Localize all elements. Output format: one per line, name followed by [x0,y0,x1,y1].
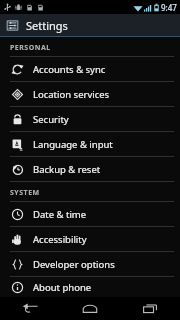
button[interactable]: Security [0,107,180,131]
staticText: Location services [33,88,110,101]
button[interactable]: About phone [0,277,180,297]
button[interactable]: Recent apps [120,297,180,320]
staticText: Settings [26,18,68,33]
staticText: Date & time [33,208,87,221]
button[interactable]: Developer options [0,252,180,276]
staticText: Language & input [33,138,113,151]
button[interactable]: Date & time [0,202,180,226]
button[interactable]: Location services [0,82,180,106]
staticText: About phone [33,281,92,294]
button[interactable]: Accounts & sync [0,57,180,81]
staticText: Backup & reset [33,163,101,176]
staticText: Accounts & sync [33,63,106,76]
button[interactable]: Settings [0,14,180,36]
button[interactable]: Language & input [0,132,180,156]
staticText: 9:47 [161,2,177,13]
staticText: SYSTEM [10,188,40,198]
button[interactable]: Accessibility [0,227,180,251]
staticText: Accessibility [33,233,87,246]
staticText: Developer options [33,258,115,271]
button[interactable]: Back [0,297,60,320]
button[interactable]: Backup & reset [0,157,180,181]
staticText: PERSONAL [10,43,51,53]
staticText: Security [33,113,69,126]
button[interactable]: Home [60,297,120,320]
